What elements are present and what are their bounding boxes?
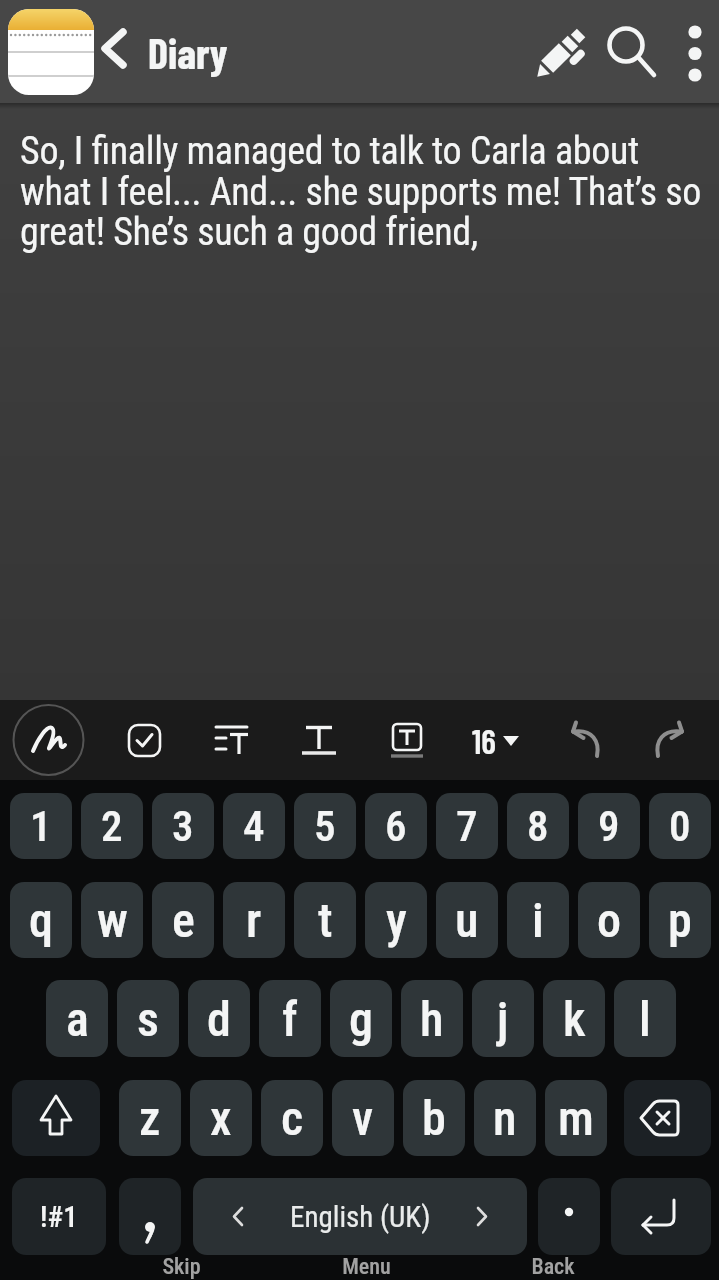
- button[interactable]: v: [332, 1080, 394, 1156]
- button[interactable]: c: [261, 1080, 323, 1156]
- button[interactable]: !#1: [12, 1178, 106, 1255]
- staticText: 16: [472, 720, 496, 761]
- staticText: e: [172, 892, 195, 948]
- button[interactable]: 2: [81, 793, 143, 859]
- staticText: Menu: [342, 1254, 391, 1280]
- staticText: a: [66, 991, 89, 1047]
- button[interactable]: n: [474, 1080, 536, 1156]
- staticText: x: [210, 1090, 232, 1146]
- button[interactable]: s: [117, 980, 179, 1057]
- staticText: f: [282, 991, 298, 1047]
- button[interactable]: [600, 15, 662, 89]
- button[interactable]: y: [365, 882, 427, 958]
- staticText: t: [318, 892, 333, 948]
- button[interactable]: [119, 715, 170, 765]
- button[interactable]: e: [152, 882, 214, 958]
- button[interactable]: [8, 9, 94, 95]
- staticText: 9: [598, 801, 620, 851]
- button[interactable]: t: [294, 882, 356, 958]
- button[interactable]: l: [614, 980, 676, 1057]
- button[interactable]: 1: [10, 793, 72, 859]
- staticText: 4: [243, 801, 265, 851]
- button[interactable]: [206, 715, 257, 765]
- button[interactable]: f: [259, 980, 321, 1057]
- button[interactable]: z: [119, 1080, 181, 1156]
- staticText: m: [558, 1090, 594, 1146]
- staticText: o: [597, 892, 622, 948]
- button[interactable]: r: [223, 882, 285, 958]
- staticText: 2: [101, 801, 123, 851]
- button[interactable]: g: [330, 980, 392, 1057]
- staticText: w: [97, 892, 128, 948]
- button[interactable]: u: [436, 882, 498, 958]
- button[interactable]: 16: [455, 708, 535, 772]
- button[interactable]: o: [578, 882, 640, 958]
- staticText: n: [493, 1090, 517, 1146]
- button[interactable]: Skip: [136, 1254, 226, 1280]
- button[interactable]: 0: [649, 793, 711, 859]
- button[interactable]: [119, 1178, 181, 1255]
- button[interactable]: a: [46, 980, 108, 1057]
- button[interactable]: 4: [223, 793, 285, 859]
- staticText: Skip: [162, 1254, 201, 1280]
- button[interactable]: [382, 715, 433, 765]
- staticText: 7: [456, 801, 478, 851]
- staticText: 0: [669, 801, 691, 851]
- button[interactable]: [640, 708, 704, 772]
- button[interactable]: 7: [436, 793, 498, 859]
- button[interactable]: x: [190, 1080, 252, 1156]
- button[interactable]: d: [188, 980, 250, 1057]
- staticText: d: [207, 991, 231, 1047]
- staticText: English (UK): [290, 1200, 431, 1234]
- button[interactable]: h: [401, 980, 463, 1057]
- staticText: Diary: [148, 27, 228, 77]
- button[interactable]: 5: [294, 793, 356, 859]
- button[interactable]: 9: [578, 793, 640, 859]
- button[interactable]: 3: [152, 793, 214, 859]
- button[interactable]: b: [403, 1080, 465, 1156]
- button[interactable]: i: [507, 882, 569, 958]
- staticText: i: [532, 892, 544, 948]
- staticText: b: [422, 1090, 446, 1146]
- button[interactable]: [551, 708, 615, 772]
- staticText: u: [455, 892, 479, 948]
- button[interactable]: [624, 1080, 711, 1156]
- staticText: h: [420, 991, 444, 1047]
- button[interactable]: Back: [508, 1254, 598, 1280]
- staticText: c: [281, 1090, 304, 1146]
- staticText: r: [246, 892, 262, 948]
- staticText: 6: [385, 801, 407, 851]
- staticText: k: [563, 991, 586, 1047]
- button[interactable]: [11, 703, 86, 778]
- button[interactable]: q: [10, 882, 72, 958]
- button[interactable]: Diary: [100, 0, 228, 103]
- button[interactable]: [294, 715, 345, 765]
- staticText: v: [352, 1090, 374, 1146]
- button[interactable]: m: [545, 1080, 607, 1156]
- staticText: 8: [527, 801, 549, 851]
- button[interactable]: k: [543, 980, 605, 1057]
- staticText: s: [137, 991, 159, 1047]
- button[interactable]: 6: [365, 793, 427, 859]
- staticText: 5: [314, 801, 336, 851]
- button[interactable]: [670, 15, 719, 89]
- button[interactable]: English (UK): [193, 1178, 527, 1255]
- button[interactable]: 8: [507, 793, 569, 859]
- staticText: !#1: [40, 1200, 78, 1234]
- staticText: 3: [172, 801, 194, 851]
- staticText: Back: [531, 1254, 575, 1280]
- staticText: So, I finally managed to talk to Carla a…: [20, 129, 702, 254]
- button[interactable]: [611, 1178, 711, 1255]
- button[interactable]: So, I finally managed to talk to Carla a…: [0, 103, 719, 700]
- staticText: g: [349, 991, 373, 1047]
- staticText: y: [386, 892, 407, 948]
- staticText: 1: [30, 801, 52, 851]
- button[interactable]: [528, 15, 594, 89]
- staticText: z: [139, 1090, 161, 1146]
- button[interactable]: [12, 1080, 100, 1156]
- button[interactable]: j: [472, 980, 534, 1057]
- button[interactable]: w: [81, 882, 143, 958]
- button[interactable]: Menu: [321, 1254, 411, 1280]
- button[interactable]: [538, 1178, 600, 1255]
- button[interactable]: p: [649, 882, 711, 958]
